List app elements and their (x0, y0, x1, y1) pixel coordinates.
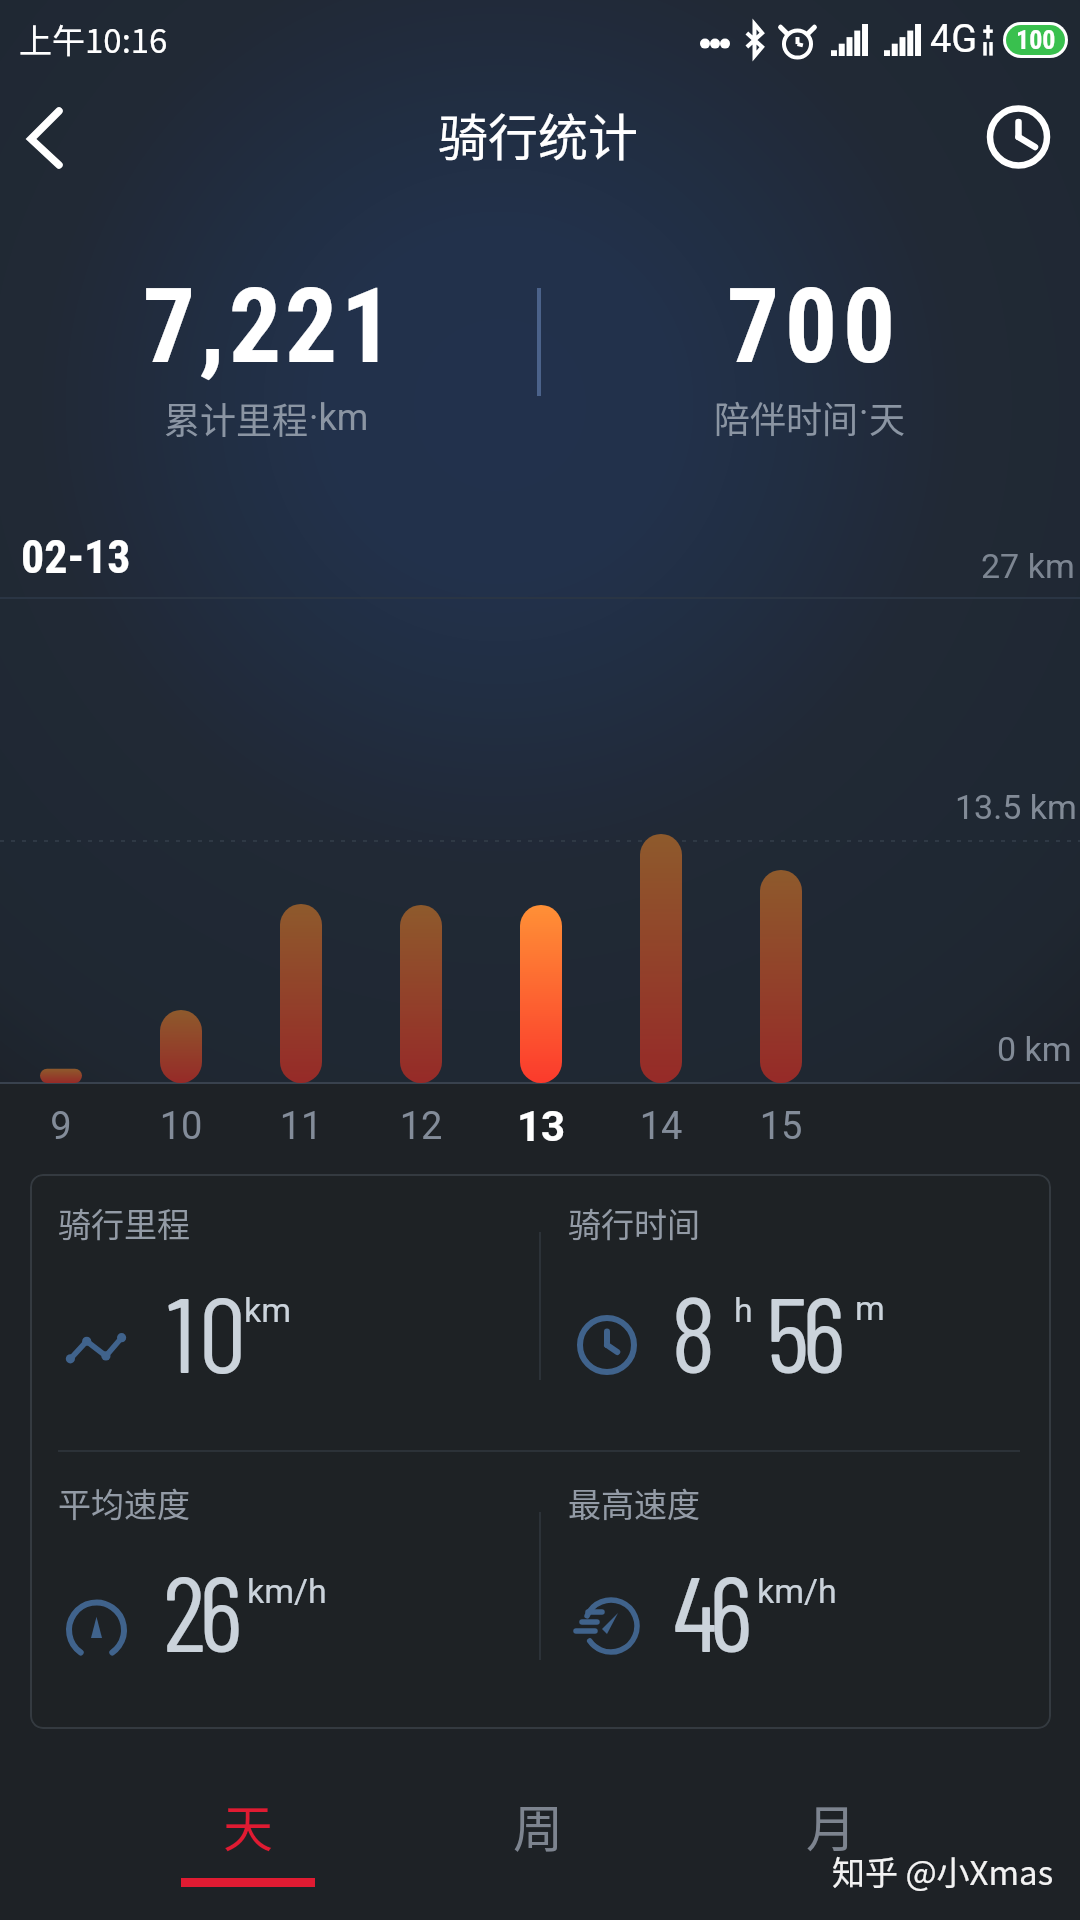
staticText: 累计里程 (164, 392, 309, 444)
staticText: 0 (782, 266, 840, 388)
button[interactable]: 天 (176, 1770, 320, 1906)
staticText: 5 (766, 1267, 802, 1394)
button[interactable]: Back (0, 84, 112, 196)
staticText: ·km (309, 397, 369, 439)
staticText: 2 (163, 1546, 199, 1673)
staticText: · (859, 392, 869, 434)
staticText: 知乎 @小Xmas (832, 1847, 1054, 1895)
staticText: 骑行时间 (568, 1199, 700, 1247)
staticText: 13.5 km (955, 787, 1077, 827)
staticText: 2 (283, 266, 339, 388)
staticText: 0 (199, 1267, 235, 1394)
staticText: 7 (724, 266, 782, 388)
button[interactable]: 周 (466, 1770, 610, 1906)
staticText: 02-13 (21, 530, 131, 584)
staticText: 天 (869, 391, 906, 443)
staticText: km/h (247, 1571, 327, 1611)
staticText: 4 (673, 1546, 709, 1673)
staticText: , (197, 266, 227, 388)
staticText: 14 (601, 1104, 721, 1149)
staticText: 最高速度 (568, 1479, 700, 1527)
staticText: 15 (721, 1104, 841, 1149)
staticText: h (734, 1290, 753, 1330)
staticText: 10 (121, 1104, 241, 1149)
staticText: 1 (339, 266, 395, 388)
staticText: 周 (513, 1789, 563, 1861)
staticText: 8 (671, 1267, 707, 1394)
staticText: 0 km (997, 1029, 1072, 1069)
staticText: 0 (840, 266, 898, 388)
staticText: 2 (227, 266, 283, 388)
staticText: 上午10:16 (19, 15, 168, 63)
staticText: 13 (481, 1102, 601, 1151)
staticText: 6 (802, 1267, 838, 1394)
staticText: 陪伴时间 (714, 391, 859, 443)
staticText: 骑行统计 (438, 98, 638, 170)
staticText: 6 (199, 1546, 235, 1673)
staticText: km (244, 1290, 292, 1330)
staticText: 骑行里程 (58, 1199, 190, 1247)
staticText: 11 (241, 1104, 361, 1149)
button[interactable]: 月 (759, 1770, 903, 1906)
staticText: 27 km (981, 546, 1075, 586)
staticText: 平均速度 (58, 1479, 190, 1527)
staticText: m (855, 1288, 885, 1328)
staticText: 1 (163, 1267, 199, 1394)
staticText: 月 (806, 1789, 856, 1861)
button[interactable]: History (968, 84, 1080, 196)
staticText: 4G (930, 17, 978, 62)
staticText: 天 (223, 1789, 273, 1861)
staticText: 9 (1, 1104, 121, 1149)
staticText: km/h (757, 1571, 837, 1611)
staticText: 100 (1016, 25, 1056, 55)
staticText: 7 (141, 266, 197, 388)
staticText: 12 (361, 1104, 481, 1149)
staticText: 6 (709, 1546, 745, 1673)
